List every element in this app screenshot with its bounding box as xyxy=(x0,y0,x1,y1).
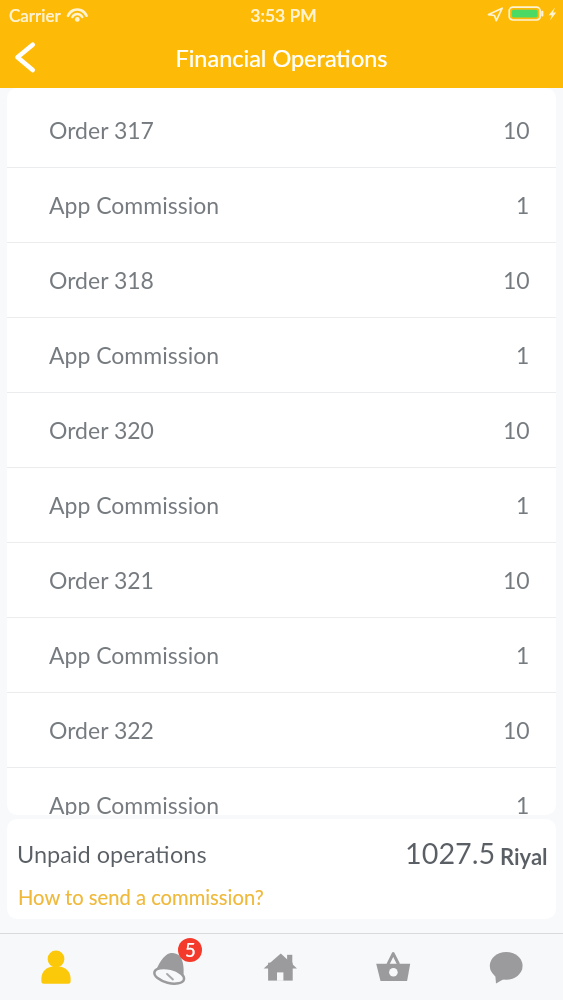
staticText: App Commission xyxy=(49,191,220,219)
staticText: 5 xyxy=(185,939,196,961)
staticText: 10 xyxy=(503,716,530,744)
button[interactable]: Back xyxy=(4,31,56,83)
staticText: 1 xyxy=(516,341,530,369)
staticText: 10 xyxy=(503,266,530,294)
staticText: Riyal xyxy=(500,843,548,869)
button[interactable]: App Commission xyxy=(7,168,556,242)
button[interactable]: App Commission xyxy=(7,468,556,542)
staticText: Order 320 xyxy=(49,416,154,444)
staticText: Order 318 xyxy=(49,266,154,294)
button[interactable]: App Commission xyxy=(7,768,556,815)
staticText: Order 322 xyxy=(49,716,154,744)
staticText: 1 xyxy=(516,791,530,815)
staticText: 1 xyxy=(516,641,530,669)
button[interactable]: Home xyxy=(224,933,337,1000)
staticText: Unpaid operations xyxy=(17,840,207,868)
staticText: How to send a commission? xyxy=(18,885,264,909)
button[interactable]: Order 318 xyxy=(7,243,556,317)
staticText: Order 321 xyxy=(49,566,154,594)
staticText: Carrier xyxy=(9,5,61,25)
button[interactable]: App Commission xyxy=(7,618,556,692)
staticText: 1027.5 xyxy=(405,836,496,871)
staticText: 10 xyxy=(503,566,530,594)
staticText: App Commission xyxy=(49,491,220,519)
staticText: 1 xyxy=(516,491,530,519)
button[interactable]: Orders xyxy=(337,933,450,1000)
staticText: 3:53 PM xyxy=(2,5,563,26)
staticText: 10 xyxy=(503,416,530,444)
button[interactable]: Order 321 xyxy=(7,543,556,617)
button[interactable]: Notifications xyxy=(112,933,224,1000)
button[interactable]: Profile xyxy=(0,933,112,1000)
staticText: 10 xyxy=(503,116,530,144)
button[interactable]: App Commission xyxy=(7,318,556,392)
button[interactable]: Messages xyxy=(450,933,563,1000)
staticText: 1 xyxy=(516,191,530,219)
button[interactable]: Order 320 xyxy=(7,393,556,467)
button[interactable]: Order 317 xyxy=(7,93,556,167)
button[interactable]: Order 322 xyxy=(7,693,556,767)
staticText: App Commission xyxy=(49,791,220,815)
button[interactable]: How to send a commission? xyxy=(18,885,264,909)
staticText: Financial Operations xyxy=(0,44,563,72)
staticText: App Commission xyxy=(49,341,220,369)
staticText: Order 317 xyxy=(49,116,154,144)
staticText: App Commission xyxy=(49,641,220,669)
